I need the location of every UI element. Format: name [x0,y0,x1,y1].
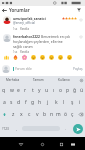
button[interactable]: p [64,84,71,96]
staticText: w [10,87,14,94]
staticText: z [12,111,15,118]
button[interactable]: b [41,108,48,120]
staticText: i [79,99,81,106]
staticText: Tamam [33,78,44,82]
staticText: ç [71,111,74,118]
button[interactable]: Emoji [29,54,38,61]
staticText: e [17,87,20,94]
staticText: Yorum ekle [15,67,32,71]
button[interactable]: d [15,96,22,108]
button[interactable]: Emoji [65,54,74,61]
staticText: . [65,126,66,131]
button[interactable]: t [29,84,36,96]
button[interactable]: Yanıtla [20,27,29,31]
button[interactable]: Back [15,138,27,150]
button[interactable]: y [36,84,43,96]
button[interactable]: x [17,108,25,120]
button[interactable]: Tamam [25,76,51,84]
staticText: ğ [73,87,77,94]
staticText: m [56,111,61,118]
staticText: t [32,87,34,94]
button[interactable]: fenerbahce2222 [0,31,85,54]
button[interactable]: ?123 [0,120,11,137]
button[interactable]: c [25,108,33,120]
button[interactable]: i [76,96,84,108]
staticText: ı [53,87,55,94]
button[interactable]: Backspace [76,108,85,120]
button[interactable]: ş [68,96,76,108]
button[interactable]: Settings [77,76,85,84]
staticText: h [38,99,42,106]
button[interactable]: n [48,108,55,120]
staticText: y [38,87,41,94]
button[interactable]: Emoji [2,54,11,61]
button[interactable]: h [36,96,44,108]
staticText: @enerji_official [13,21,36,25]
button[interactable]: Emoji [20,54,29,61]
staticText: ü [80,87,84,94]
button[interactable]: Send [71,120,85,137]
staticText: k [55,99,58,106]
button[interactable]: v [33,108,41,120]
button[interactable]: ö [62,108,69,120]
staticText: p [66,87,70,94]
button[interactable]: Emoji [47,54,56,61]
staticText: fenerbahce2222 [13,34,41,39]
staticText: Benzetmek en çok [41,34,71,39]
button[interactable]: ç [69,108,76,120]
button[interactable]: l [60,96,68,108]
button[interactable]: Back [0,6,9,14]
button[interactable]: f [22,96,29,108]
button[interactable]: Kullanıcı [51,76,77,84]
button[interactable]: Hide keyboard [67,138,79,150]
staticText: hoşlandığım şeylerden, ellerine [13,39,63,44]
staticText: Merhaba [6,78,20,82]
button[interactable]: Filter [74,6,83,14]
staticText: Kullanıcı [58,78,71,82]
button[interactable]: z [9,108,17,120]
staticText: 1sa [13,27,18,31]
button[interactable]: r [22,84,29,96]
button[interactable]: Emoji [11,54,20,61]
button[interactable]: o [57,84,64,96]
button[interactable]: ü [78,84,85,96]
button[interactable]: Paylaş [73,67,83,71]
button[interactable]: k [52,96,60,108]
button[interactable]: g [29,96,36,108]
button[interactable]: e [15,84,22,96]
button[interactable]: Like [79,35,83,39]
staticText: q [2,87,6,94]
button[interactable]: umutparlak_sanatci [0,14,85,31]
button[interactable]: Yanıtla [20,50,29,54]
button[interactable]: w [8,84,15,96]
button[interactable]: Emoji [56,54,65,61]
button[interactable]: Recents [55,138,67,150]
button[interactable]: q [0,84,8,96]
button[interactable]: Like [79,18,83,22]
staticText: umutparlak_sanatci [13,16,46,20]
staticText: n [50,111,54,118]
button[interactable]: u [43,84,50,96]
button[interactable]: ğ [71,84,78,96]
button[interactable]: Emoji [38,54,47,61]
button[interactable]: Merhaba [0,76,25,84]
staticText: d [17,99,21,106]
button[interactable]: j [44,96,52,108]
staticText: ş [71,99,74,106]
button[interactable]: Shift [0,108,9,120]
staticText: j [47,99,49,106]
button[interactable]: Yorum ekle [13,67,71,71]
staticText: Yorumlar [9,7,30,13]
button[interactable]: s [8,96,15,108]
staticText: r [24,87,27,94]
staticText: l [63,99,65,106]
staticText: c [28,111,31,118]
button[interactable]: a [1,96,8,108]
button[interactable]: ı [50,84,57,96]
button[interactable]: m [55,108,62,120]
button[interactable]: Home [36,138,48,150]
staticText: b [43,111,47,118]
